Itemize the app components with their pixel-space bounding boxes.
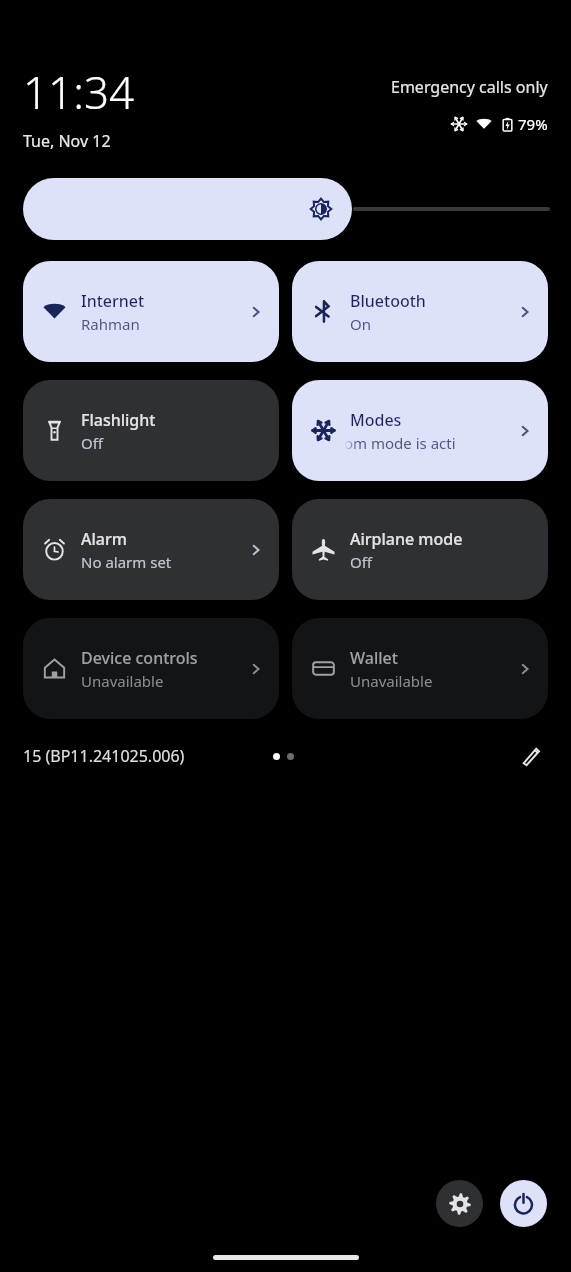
button[interactable]: Airplane mode [292,499,548,600]
staticText: Device controls [81,647,198,669]
staticText: Unavailable [81,671,164,691]
button[interactable]: Device controls [23,618,279,719]
staticText: Bluetooth [350,290,426,312]
button[interactable]: Power [500,1180,547,1227]
button[interactable]: Internet [23,261,279,362]
staticText: Internet [81,290,145,312]
button[interactable]: Wallet [292,618,548,719]
staticText: 15 (BP11.241025.006) [23,745,185,767]
button[interactable]: Edit tiles [514,739,548,773]
button[interactable]: Modes [292,380,548,481]
staticText: Modes [350,409,402,431]
staticText: Alarm [81,528,127,550]
button[interactable]: Flashlight [23,380,279,481]
staticText: Emergency calls only [391,76,548,98]
staticText: Rahman [81,314,140,334]
staticText: Tue, Nov 12 [23,130,111,152]
staticText: Flashlight [81,409,156,431]
staticText: No alarm set [81,552,172,572]
button[interactable]: Brightness [23,178,548,240]
staticText: 79% [518,114,548,134]
staticText: On [350,314,371,334]
staticText: Off [350,552,373,572]
button[interactable]: Settings [436,1180,483,1227]
button[interactable]: Alarm [23,499,279,600]
staticText: Wallet [350,647,398,669]
staticText: om mode is acti [344,433,456,453]
staticText: Off [81,433,104,453]
staticText: Unavailable [350,671,433,691]
staticText: 11:34 [23,62,135,122]
button[interactable]: Bluetooth [292,261,548,362]
staticText: Airplane mode [350,528,463,550]
